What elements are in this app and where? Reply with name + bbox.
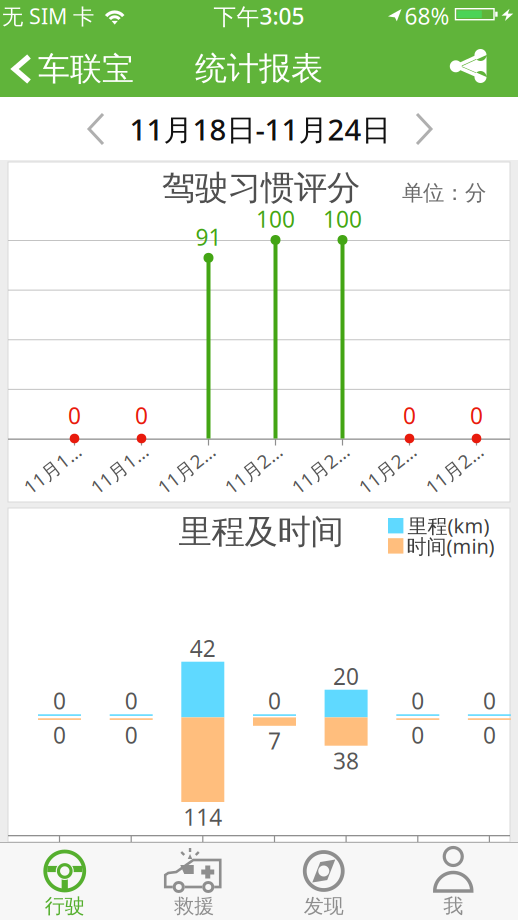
staticText: 里程(km) [407, 512, 489, 539]
staticText: 42 [190, 633, 216, 663]
staticText: 驾驶习惯评分 [162, 167, 360, 208]
staticText: 单位：分 [402, 180, 486, 206]
staticText: 0 [411, 686, 424, 716]
staticText: 11月18日-11月24日 [129, 109, 390, 148]
button[interactable]: 下一周 [404, 108, 444, 150]
staticText: 20 [333, 661, 359, 691]
staticText: 0 [483, 686, 496, 716]
staticText: 91 [195, 222, 221, 252]
staticText: 时间(min) [406, 533, 494, 559]
button[interactable]: 分享 [445, 44, 495, 88]
staticText: 38 [333, 746, 359, 776]
staticText: 114 [183, 802, 222, 832]
staticText: 0 [470, 400, 483, 430]
staticText: 0 [403, 400, 416, 430]
staticText: 0 [53, 720, 66, 750]
staticText: 0 [125, 686, 138, 716]
staticText: 发现 [304, 894, 344, 918]
staticText: 0 [125, 720, 138, 750]
staticText: 0 [411, 720, 424, 750]
staticText: 11月1… [19, 457, 86, 481]
button[interactable]: 上一周 [76, 108, 116, 150]
staticText: 100 [323, 204, 362, 234]
staticText: 里程及时间 [178, 511, 343, 552]
staticText: 11月2… [287, 457, 354, 481]
staticText: 救援 [174, 894, 214, 918]
button[interactable]: 行驶 [0, 843, 129, 919]
staticText: 68% [404, 1, 449, 31]
staticText: 0 [268, 686, 281, 716]
staticText: 下午3:05 [213, 1, 304, 31]
staticText: 11月2… [354, 457, 421, 481]
button[interactable]: 救援 [129, 843, 259, 919]
button[interactable]: 返回 车联宝 [0, 40, 130, 98]
button[interactable]: 发现 [259, 843, 388, 919]
staticText: 车联宝 [38, 49, 134, 89]
staticText: 0 [53, 686, 66, 716]
staticText: 统计报表 [195, 49, 323, 88]
staticText: 0 [68, 400, 81, 430]
staticText: 0 [483, 720, 496, 750]
staticText: 11月2… [421, 457, 488, 481]
staticText: 11月1… [86, 457, 153, 481]
staticText: 行驶 [45, 894, 85, 918]
staticText: 11月2… [220, 457, 287, 481]
button[interactable]: 我 [388, 843, 518, 919]
staticText: 7 [268, 726, 281, 756]
staticText: 11月2… [153, 457, 220, 481]
staticText: 无 SIM 卡 [2, 2, 94, 30]
staticText: 0 [135, 400, 148, 430]
staticText: 100 [256, 204, 295, 234]
staticText: 我 [443, 894, 463, 918]
